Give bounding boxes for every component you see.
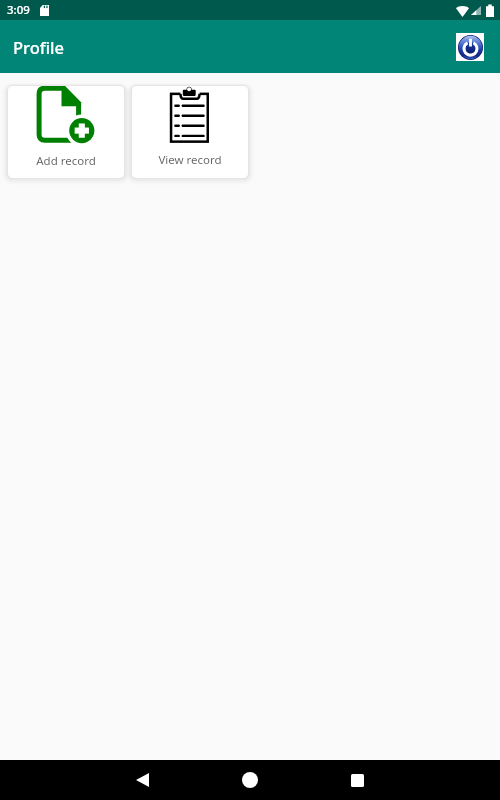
staticText: Add record xyxy=(36,153,96,169)
button[interactable]: Logout xyxy=(456,33,484,61)
staticText: View record xyxy=(158,152,222,168)
button[interactable]: Recents xyxy=(337,760,377,800)
button[interactable]: Back xyxy=(122,760,162,800)
button[interactable]: Home xyxy=(230,760,270,800)
staticText: 3:09 xyxy=(7,2,30,18)
button[interactable]: Add record xyxy=(8,86,124,178)
button[interactable]: View record xyxy=(132,86,248,178)
staticText: Profile xyxy=(13,36,65,58)
